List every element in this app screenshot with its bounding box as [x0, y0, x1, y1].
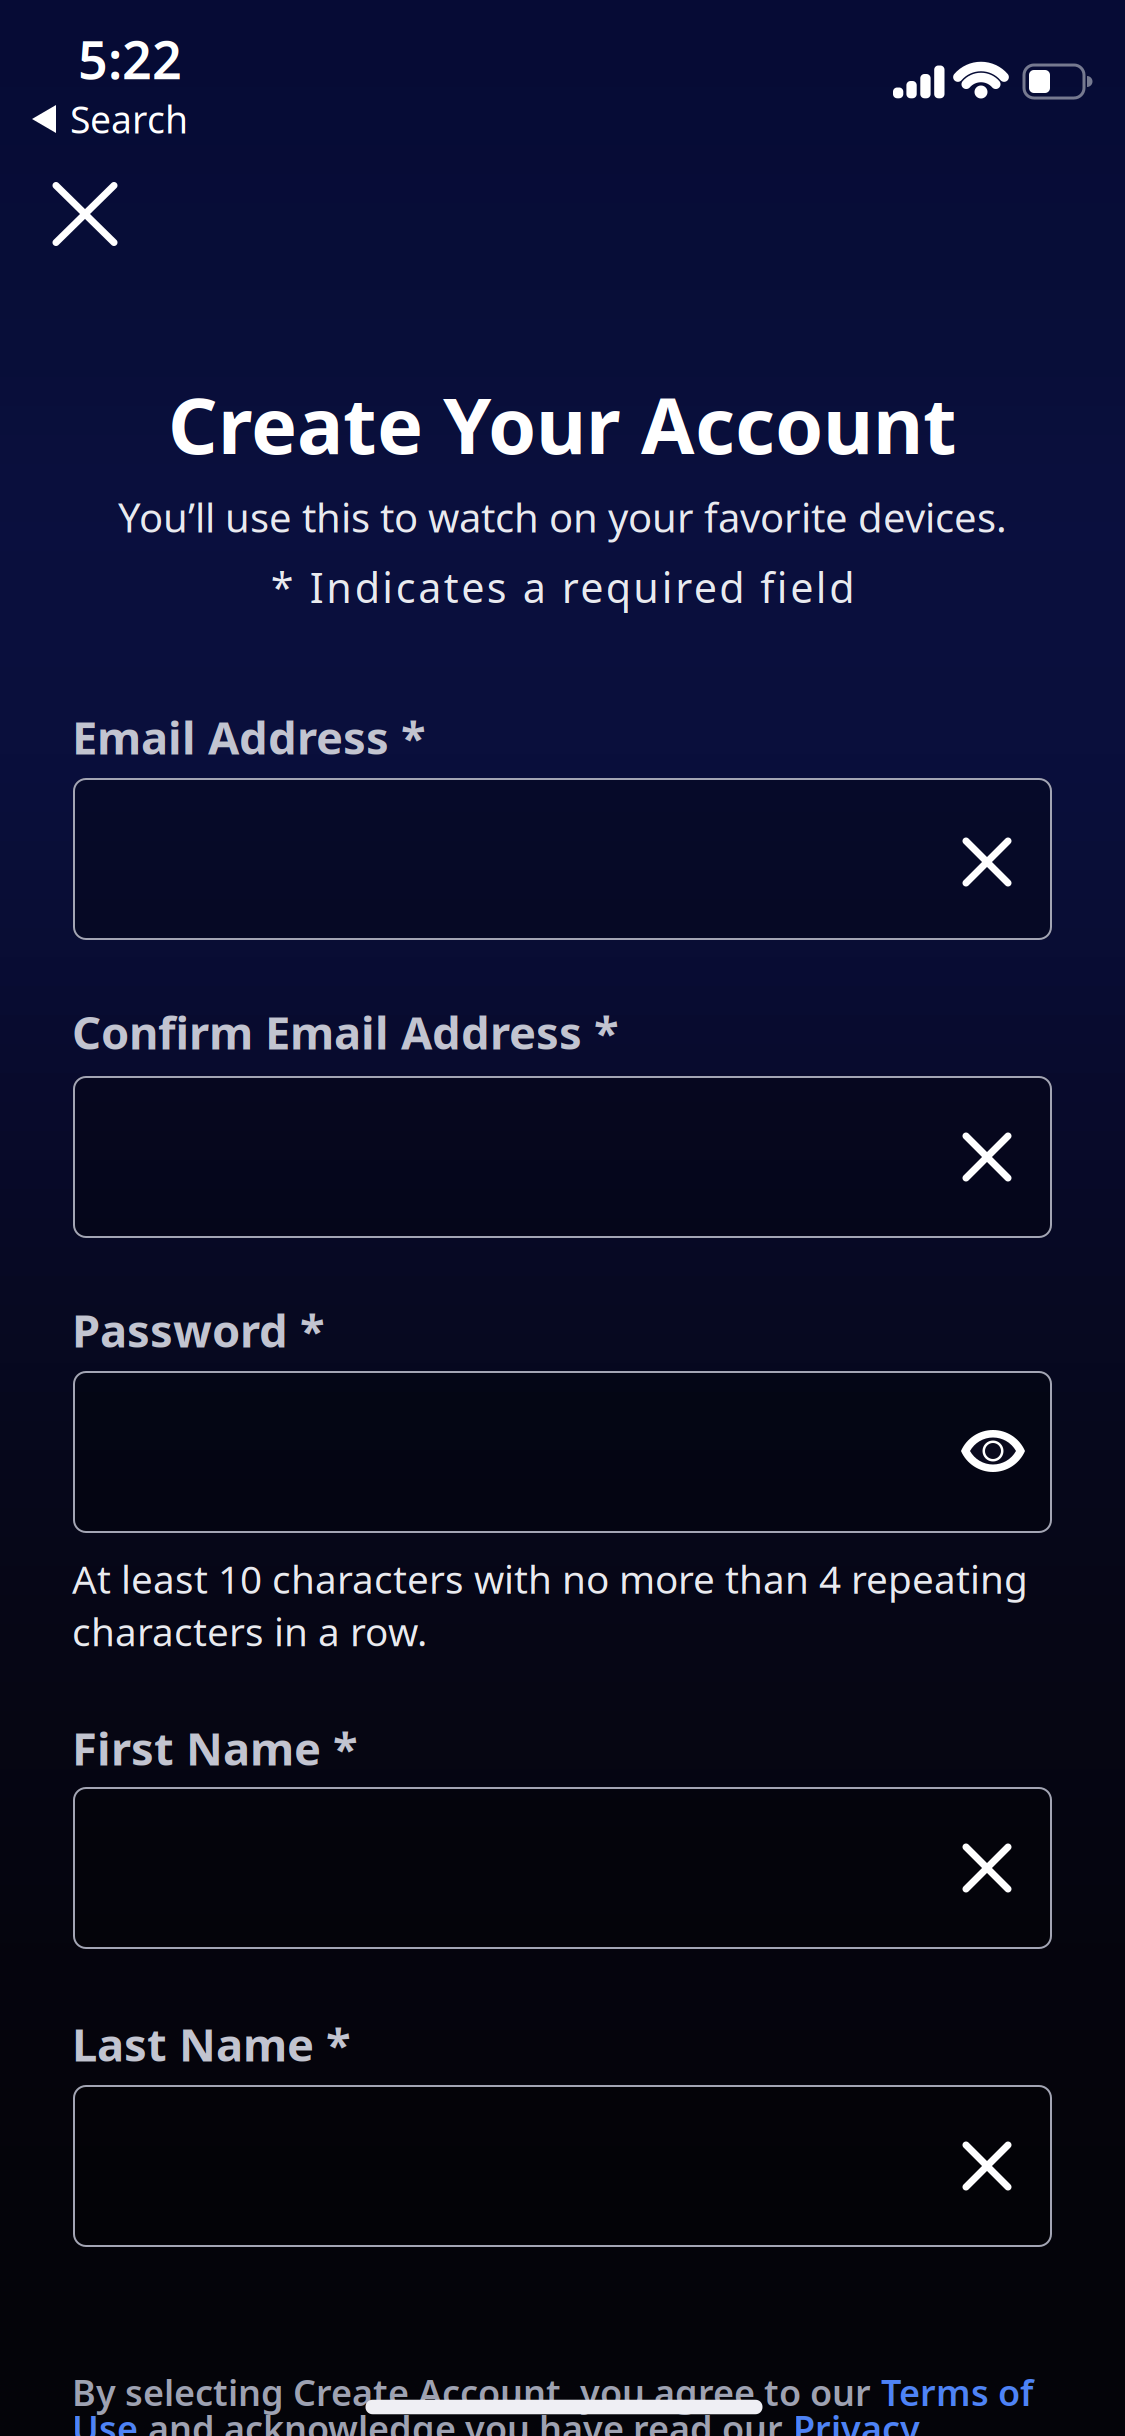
button[interactable]: Email Address	[73, 778, 1052, 940]
button[interactable]: Last Name	[73, 2085, 1052, 2247]
staticText: Terms of	[881, 2368, 1033, 2416]
staticText: Use	[72, 2404, 138, 2436]
button[interactable]: Search	[30, 94, 188, 144]
button[interactable]: Privacy	[793, 2404, 920, 2436]
staticText: At least 10 characters with no more than…	[72, 1553, 1028, 1657]
button[interactable]: Terms of	[881, 2368, 1033, 2416]
button[interactable]: Use	[72, 2404, 138, 2436]
staticText: Confirm Email Address *	[72, 1002, 619, 1062]
button[interactable]: Password	[73, 1371, 1052, 1533]
staticText: By selecting Create Account, you agree t…	[72, 2368, 871, 2416]
button[interactable]: Clear last name	[962, 2141, 1012, 2191]
staticText: Last Name *	[72, 2014, 351, 2074]
staticText: 5:22	[78, 24, 182, 94]
staticText: First Name *	[72, 1718, 358, 1778]
staticText: and acknowledge you have read our	[148, 2404, 783, 2436]
staticText: Password *	[72, 1300, 325, 1360]
button[interactable]: Clear first name	[962, 1843, 1012, 1893]
staticText: Email Address *	[72, 707, 426, 767]
button[interactable]: Clear confirm email address	[962, 1132, 1012, 1182]
staticText: Privacy	[793, 2404, 920, 2436]
button[interactable]: Confirm Email Address	[73, 1076, 1052, 1238]
staticText: Search	[70, 94, 188, 144]
button[interactable]: Show password	[960, 1428, 1026, 1474]
staticText: Create Your Account	[168, 373, 957, 475]
staticText: You’ll use this to watch on your favorit…	[118, 490, 1007, 543]
button[interactable]: Close	[52, 181, 118, 246]
button[interactable]: First Name	[73, 1787, 1052, 1949]
button[interactable]: Clear email address	[962, 837, 1012, 887]
staticText: * Indicates a required field	[271, 560, 854, 614]
